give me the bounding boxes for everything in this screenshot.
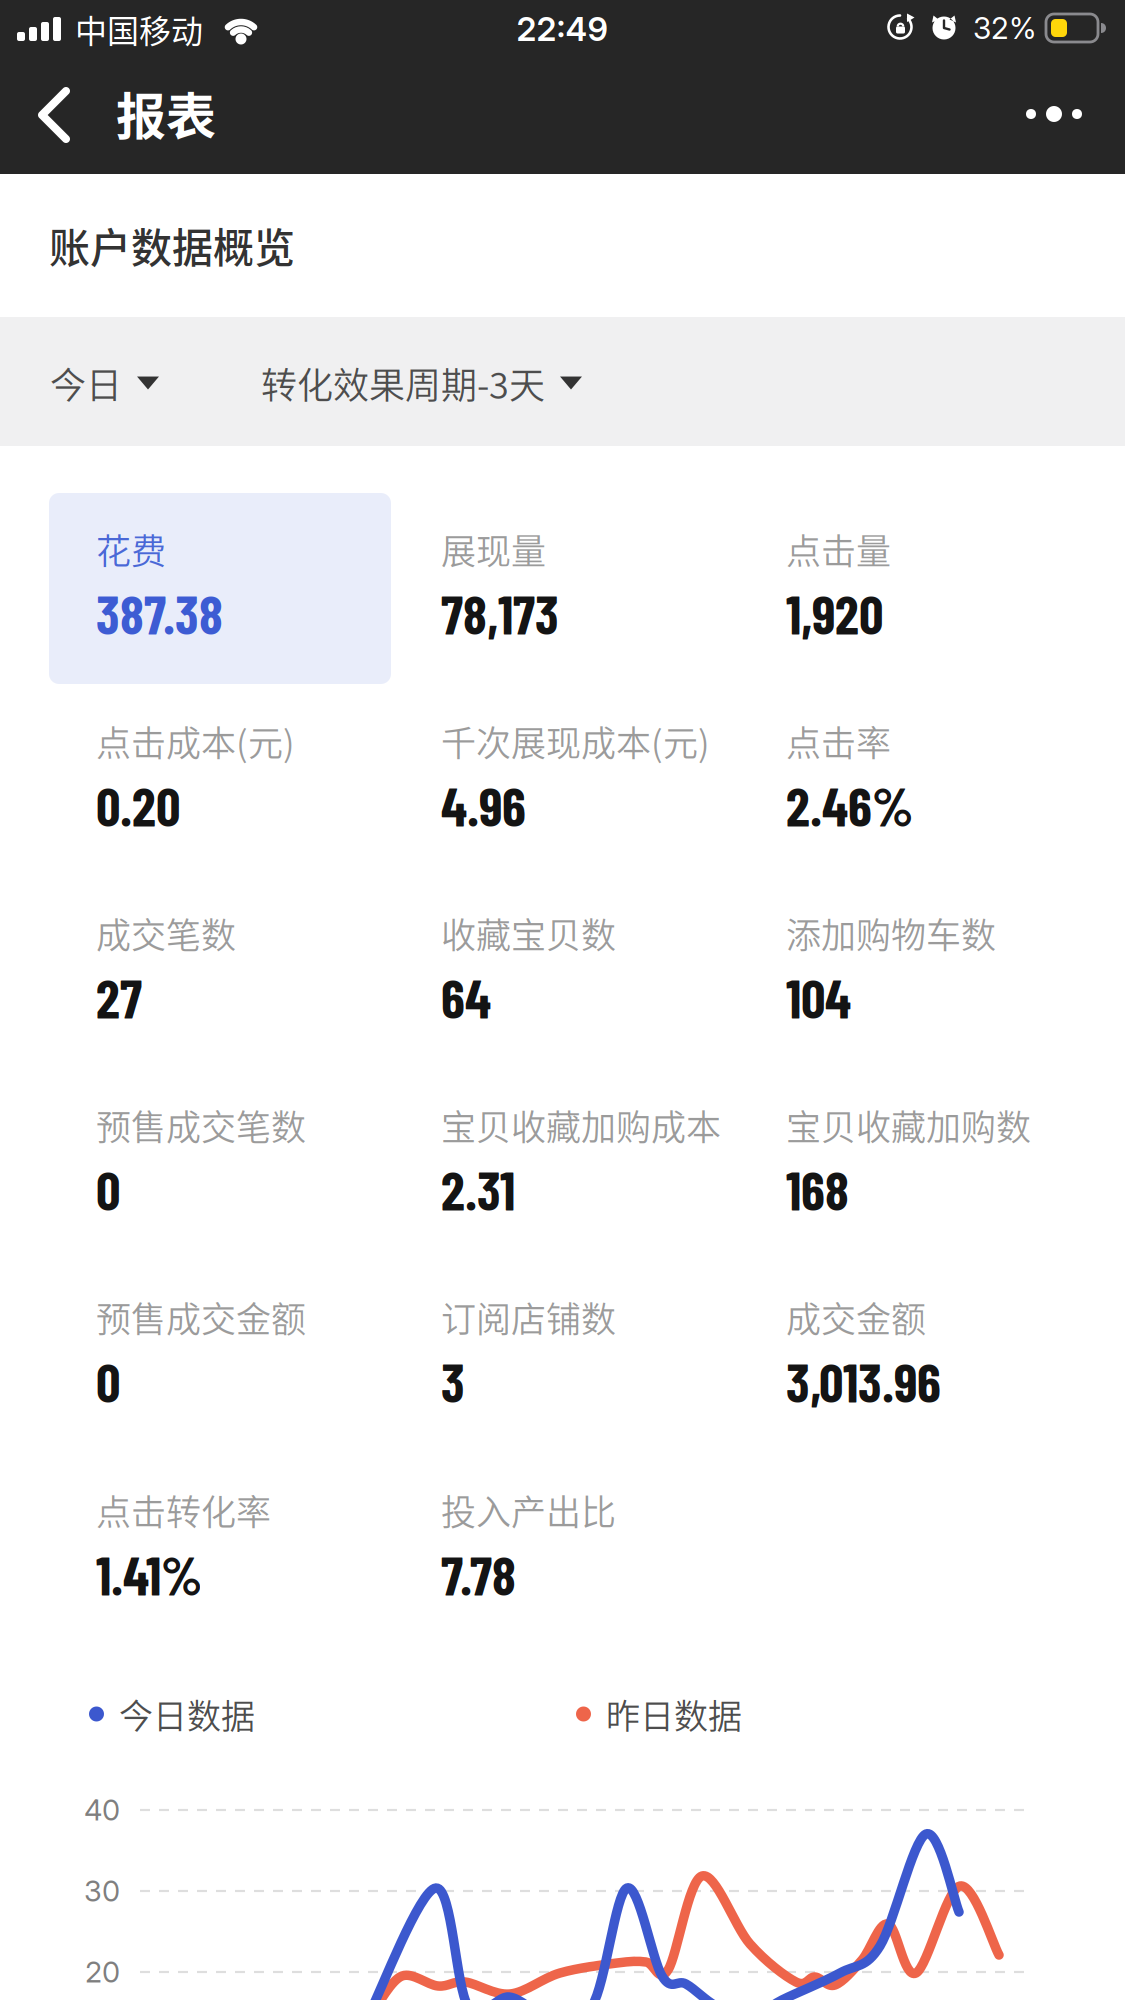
staticText: 成交笔数 [96, 908, 236, 958]
button[interactable]: 今日数据 [89, 1679, 369, 1749]
staticText: 22:49 [516, 9, 607, 49]
staticText: 宝贝收藏加购数 [786, 1100, 1031, 1150]
staticText: 3,013.96 [786, 1348, 941, 1413]
button[interactable]: 返回 [37, 79, 71, 151]
button[interactable]: 花费 [96, 491, 431, 677]
staticText: 4.96 [441, 772, 526, 837]
button[interactable]: 点击成本(元) [96, 683, 431, 869]
staticText: 点击转化率 [96, 1485, 271, 1535]
button[interactable]: 昨日数据 [576, 1679, 856, 1749]
staticText: 30 [84, 1873, 120, 1909]
staticText: 0.20 [96, 772, 180, 837]
staticText: 收藏宝贝数 [441, 908, 616, 958]
staticText: 1.41% [96, 1541, 202, 1606]
staticText: 预售成交笔数 [96, 1100, 306, 1150]
staticText: 点击率 [786, 716, 891, 766]
button[interactable]: 添加购物车数 [786, 875, 1121, 1061]
button[interactable]: 成交金额 [786, 1259, 1121, 1445]
staticText: 32% [973, 10, 1036, 46]
button[interactable]: 收藏宝贝数 [441, 875, 776, 1061]
staticText: 168 [786, 1156, 849, 1221]
button[interactable]: 成交笔数 [96, 875, 431, 1061]
button[interactable]: 宝贝收藏加购数 [786, 1067, 1121, 1253]
staticText: 7.78 [441, 1541, 516, 1606]
staticText: 昨日数据 [606, 1689, 742, 1739]
button[interactable]: 宝贝收藏加购成本 [441, 1067, 776, 1253]
staticText: 2.31 [441, 1156, 515, 1221]
staticText: 点击量 [786, 524, 891, 574]
button[interactable]: 展现量 [441, 491, 776, 677]
staticText: 宝贝收藏加购成本 [441, 1100, 721, 1150]
staticText: 投入产出比 [441, 1485, 616, 1535]
staticText: 64 [441, 964, 491, 1029]
button[interactable]: 点击量 [786, 491, 1121, 677]
staticText: 中国移动 [75, 6, 203, 52]
staticText: 预售成交金额 [96, 1292, 306, 1342]
staticText: 花费 [96, 524, 166, 574]
staticText: 40 [84, 1792, 120, 1828]
staticText: 展现量 [441, 524, 546, 574]
button[interactable]: 今日 [50, 338, 210, 428]
staticText: 成交金额 [786, 1292, 926, 1342]
button[interactable]: 千次展现成本(元) [441, 683, 776, 869]
staticText: 千次展现成本(元) [441, 716, 710, 766]
staticText: 账户数据概览 [49, 215, 295, 275]
staticText: 今日 [50, 357, 122, 409]
staticText: 387.38 [96, 580, 223, 645]
button[interactable]: 投入产出比 [441, 1452, 776, 1638]
button[interactable]: 预售成交金额 [96, 1259, 431, 1445]
button[interactable]: 订阅店铺数 [441, 1259, 776, 1445]
staticText: 0 [96, 1348, 120, 1413]
staticText: 点击成本(元) [96, 716, 295, 766]
button[interactable]: 点击转化率 [96, 1452, 431, 1638]
staticText: 78,173 [441, 580, 559, 645]
button[interactable]: 预售成交笔数 [96, 1067, 431, 1253]
staticText: 转化效果周期-3天 [261, 357, 545, 409]
staticText: 0 [96, 1156, 120, 1221]
staticText: 2.46% [786, 772, 913, 837]
staticText: 20 [85, 1954, 120, 1990]
staticText: 104 [786, 964, 851, 1029]
button[interactable]: 更多 [1016, 89, 1092, 139]
staticText: 报表 [116, 77, 216, 149]
staticText: 3 [441, 1348, 465, 1413]
button[interactable]: 点击率 [786, 683, 1121, 869]
button[interactable]: 转化效果周期-3天 [261, 338, 641, 428]
staticText: 订阅店铺数 [441, 1292, 616, 1342]
staticText: 27 [96, 964, 142, 1029]
staticText: 今日数据 [119, 1689, 255, 1739]
staticText: 1,920 [786, 580, 883, 645]
staticText: 添加购物车数 [786, 908, 996, 958]
